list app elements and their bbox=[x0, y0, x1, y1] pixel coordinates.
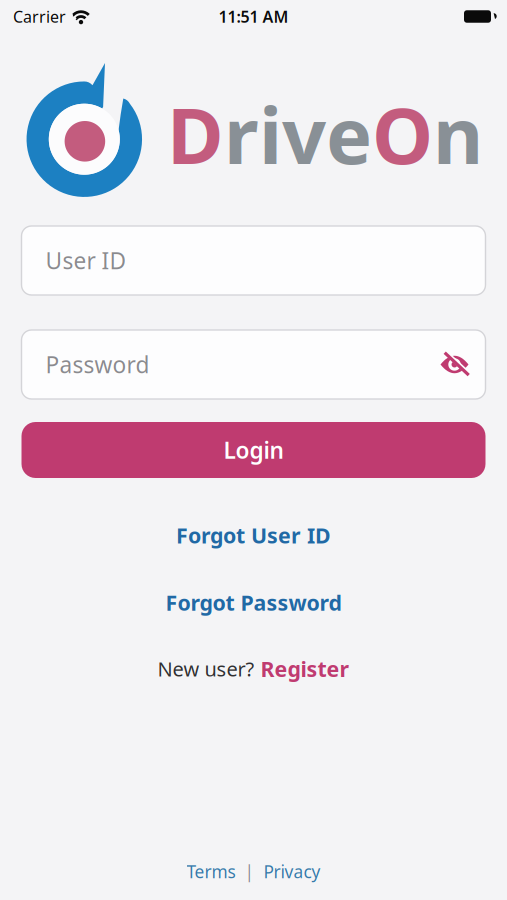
staticText: Terms bbox=[186, 860, 235, 883]
button[interactable]: Forgot User ID bbox=[176, 521, 331, 549]
staticText: 11:51 AM bbox=[218, 6, 288, 27]
staticText: Login bbox=[223, 435, 283, 465]
staticText: Forgot Password bbox=[165, 588, 341, 617]
staticText: Password bbox=[45, 349, 149, 379]
button[interactable]: Terms bbox=[186, 860, 235, 883]
button[interactable]: Privacy bbox=[263, 860, 320, 883]
staticText: Carrier bbox=[13, 6, 66, 27]
button[interactable]: Register bbox=[260, 655, 349, 683]
staticText: n bbox=[433, 83, 483, 185]
button[interactable]: User ID bbox=[21, 226, 485, 295]
staticText: D bbox=[167, 83, 224, 185]
staticText: User ID bbox=[45, 245, 126, 275]
staticText: Forgot User ID bbox=[176, 521, 331, 549]
staticText: rive bbox=[224, 83, 372, 185]
staticText: O bbox=[372, 83, 433, 185]
staticText: New user? bbox=[157, 655, 254, 682]
button[interactable]: Password bbox=[21, 330, 485, 399]
button[interactable]: Show password bbox=[440, 351, 468, 377]
staticText: Privacy bbox=[263, 860, 320, 883]
button[interactable]: Forgot Password bbox=[165, 588, 341, 617]
button[interactable]: Login bbox=[21, 422, 485, 478]
staticText: Register bbox=[260, 655, 349, 683]
staticText: | bbox=[244, 860, 254, 883]
